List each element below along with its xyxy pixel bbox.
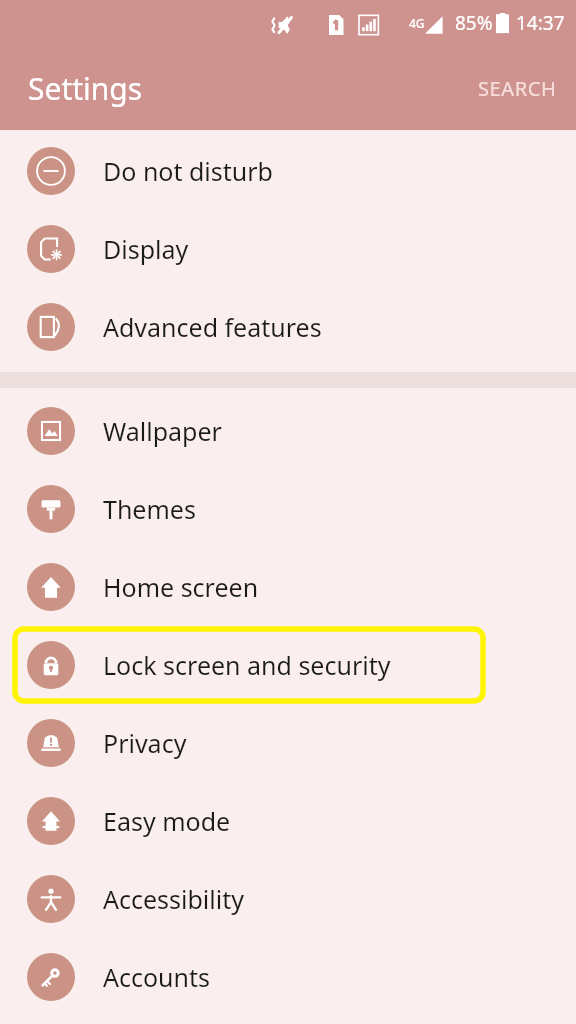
button[interactable]: Easy mode bbox=[0, 782, 576, 860]
staticText: 14:37 bbox=[516, 10, 565, 36]
staticText: SEARCH bbox=[478, 75, 557, 102]
button[interactable]: Accessibility bbox=[0, 860, 576, 938]
button[interactable]: Wallpaper bbox=[0, 392, 576, 470]
staticText: Accounts bbox=[103, 960, 211, 994]
button[interactable]: Home screen bbox=[0, 548, 576, 626]
staticText: Lock screen and security bbox=[103, 648, 391, 682]
staticText: Do not disturb bbox=[103, 154, 273, 188]
staticText: Settings bbox=[28, 68, 143, 109]
staticText: 4G bbox=[409, 15, 425, 31]
staticText: Home screen bbox=[103, 570, 259, 604]
staticText: Themes bbox=[103, 492, 196, 526]
button[interactable]: Advanced features bbox=[0, 288, 576, 366]
button[interactable]: Lock screen and security bbox=[0, 626, 576, 704]
staticText: Advanced features bbox=[103, 310, 322, 344]
staticText: Accessibility bbox=[103, 882, 244, 916]
button[interactable]: Themes bbox=[0, 470, 576, 548]
button[interactable]: Privacy bbox=[0, 704, 576, 782]
button[interactable]: Display bbox=[0, 210, 576, 288]
staticText: Easy mode bbox=[103, 804, 231, 838]
button[interactable]: Do not disturb bbox=[0, 132, 576, 210]
button[interactable]: Accounts bbox=[0, 938, 576, 1016]
staticText: Privacy bbox=[103, 726, 187, 760]
staticText: 85% bbox=[455, 10, 493, 36]
staticText: Display bbox=[103, 232, 189, 266]
staticText: Wallpaper bbox=[103, 414, 222, 448]
button[interactable]: SEARCH bbox=[459, 65, 576, 112]
